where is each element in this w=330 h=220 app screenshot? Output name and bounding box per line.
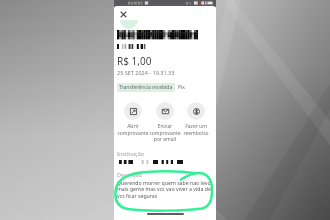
button[interactable]: Fechar — [118, 9, 128, 19]
staticText: R$ 1,00 — [117, 54, 152, 68]
staticText: Fazer um reembolso — [183, 123, 209, 136]
button[interactable]: Abrir comprovante — [114, 102, 152, 136]
staticText: Instituição — [117, 150, 145, 157]
staticText: 25 SET 2024 - 19.31.33 — [117, 69, 175, 76]
staticText: Pix — [178, 84, 185, 91]
staticText: Querendo morrer quem sabe nao levo mais … — [117, 179, 211, 200]
staticText: Descrição — [117, 171, 143, 178]
staticText: Transferência recebida — [119, 84, 173, 91]
staticText: Abrir comprovante — [117, 123, 149, 136]
staticText: Enviar comprovante por email — [149, 123, 181, 142]
button[interactable]: Fazer um reembolso — [177, 102, 215, 136]
button[interactable]: Enviar comprovante por email — [146, 102, 184, 142]
